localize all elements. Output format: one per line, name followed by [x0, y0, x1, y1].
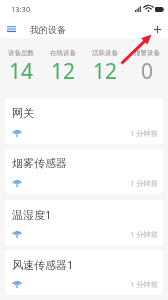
- staticText: 1 分钟前: [130, 128, 158, 138]
- staticText: 活跃设备: [92, 49, 118, 57]
- button[interactable]: 设备总数: [0, 38, 42, 90]
- staticText: 1 分钟前: [130, 229, 158, 239]
- staticText: 温湿度1: [12, 207, 52, 222]
- button[interactable]: 网关: [5, 99, 163, 144]
- staticText: 1 分钟前: [130, 178, 158, 188]
- staticText: 网关: [12, 106, 34, 120]
- staticText: 13:30: [11, 4, 31, 14]
- button[interactable]: Menu: [3, 20, 19, 36]
- button[interactable]: 在线设备: [42, 38, 84, 90]
- button[interactable]: 报警设备: [126, 38, 168, 90]
- staticText: 烟雾传感器: [12, 156, 67, 170]
- button[interactable]: 温湿度1: [5, 200, 163, 245]
- button[interactable]: 烟雾传感器: [5, 149, 163, 194]
- button[interactable]: Add device: [150, 21, 164, 35]
- staticText: 12: [93, 57, 118, 86]
- staticText: 1 分钟前: [130, 279, 158, 289]
- staticText: 在线设备: [50, 49, 76, 57]
- button[interactable]: 风速传感器1: [5, 250, 163, 295]
- staticText: 12: [51, 57, 76, 86]
- button[interactable]: 活跃设备: [84, 38, 126, 90]
- staticText: 0: [141, 57, 154, 86]
- staticText: 14: [9, 57, 34, 86]
- staticText: 我的设备: [30, 24, 66, 35]
- staticText: 风速传感器1: [12, 257, 74, 272]
- staticText: 设备总数: [8, 49, 34, 57]
- staticText: 报警设备: [134, 49, 160, 57]
